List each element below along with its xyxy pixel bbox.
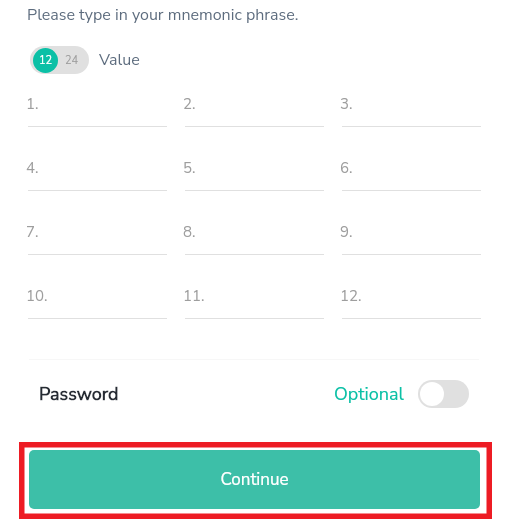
staticText: 11. — [183, 286, 205, 306]
button[interactable]: 12 words, selected — [33, 48, 58, 73]
staticText: 10. — [26, 286, 48, 306]
staticText: 12 — [39, 53, 53, 68]
button[interactable]: Toggle password — [418, 380, 469, 408]
staticText: Please type in your mnemonic phrase. — [27, 4, 299, 26]
button[interactable]: 4. — [28, 158, 167, 191]
staticText: 8. — [183, 222, 196, 242]
staticText: Value — [99, 49, 140, 71]
staticText: Password — [39, 382, 119, 407]
staticText: 7. — [26, 222, 39, 242]
button[interactable]: 24 words — [58, 46, 86, 74]
staticText: 12. — [340, 286, 362, 306]
staticText: Optional — [334, 382, 404, 407]
staticText: 1. — [26, 94, 39, 114]
staticText: 9. — [340, 222, 353, 242]
button[interactable]: 10. — [28, 286, 167, 319]
staticText: Continue — [220, 468, 289, 491]
button[interactable]: 11. — [185, 286, 324, 319]
button[interactable]: 2. — [185, 94, 324, 127]
button[interactable]: 5. — [185, 158, 324, 191]
staticText: 5. — [183, 158, 196, 178]
button[interactable]: 7. — [28, 222, 167, 255]
button[interactable]: 3. — [342, 94, 481, 127]
staticText: 3. — [340, 94, 353, 114]
staticText: 24 — [65, 53, 79, 68]
button[interactable]: 12. — [342, 286, 481, 319]
staticText: 4. — [26, 158, 39, 178]
staticText: 2. — [183, 94, 196, 114]
button[interactable]: 8. — [185, 222, 324, 255]
button[interactable]: 6. — [342, 158, 481, 191]
button[interactable]: Continue — [29, 450, 480, 509]
button[interactable]: 1. — [28, 94, 167, 127]
button[interactable]: 9. — [342, 222, 481, 255]
staticText: 6. — [340, 158, 353, 178]
